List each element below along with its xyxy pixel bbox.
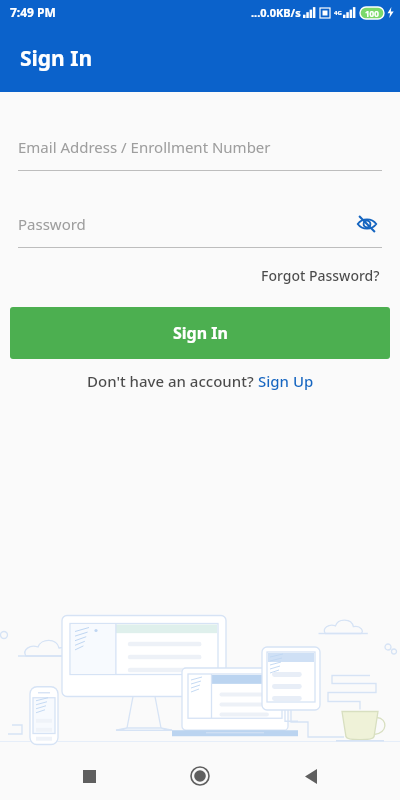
button[interactable]: Back [289,754,333,798]
button[interactable]: Home [178,754,222,798]
staticText: Sign In [173,322,228,344]
staticText: Email Address / Enrollment Number [18,137,382,157]
staticText: Sign In [20,44,93,73]
staticText: Password [18,214,352,234]
button[interactable]: Recent apps [67,754,111,798]
button[interactable]: Sign In [10,307,390,359]
staticText: Forgot Password? [261,266,380,285]
staticText: 100 [365,8,379,19]
staticText: 7:49 PM [10,4,56,20]
staticText: ...0.0KB/s [251,5,301,20]
button[interactable]: Forgot Password? [259,264,382,287]
staticText: Don't have an account? [87,371,258,391]
staticText: 4G [334,9,342,17]
staticText: Sign Up [258,371,314,391]
button[interactable]: Toggle password visibility [352,211,382,237]
button[interactable]: Sign Up [258,371,314,391]
